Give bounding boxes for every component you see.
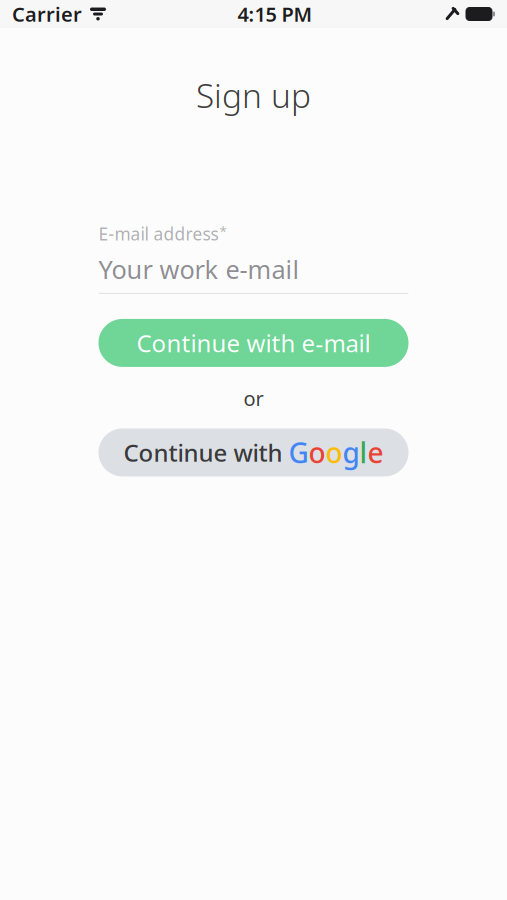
staticText: Continue with e-mail [136,327,370,359]
button[interactable]: Continue with [98,428,408,476]
staticText: Your work e-mail [98,252,299,286]
staticText: 4:15 PM [237,1,312,27]
staticText: l [359,434,367,471]
staticText: Continue with [123,436,288,468]
staticText: E-mail address [98,222,218,245]
staticText: or [243,385,263,411]
staticText: e [367,434,383,471]
button[interactable]: Continue with e-mail [98,319,408,367]
staticText: o [308,434,325,471]
staticText: G [288,434,308,471]
staticText: * [219,222,226,240]
staticText: o [325,434,342,471]
staticText: Carrier [12,1,82,27]
staticText: Sign up [196,73,311,117]
staticText: g [342,434,359,471]
